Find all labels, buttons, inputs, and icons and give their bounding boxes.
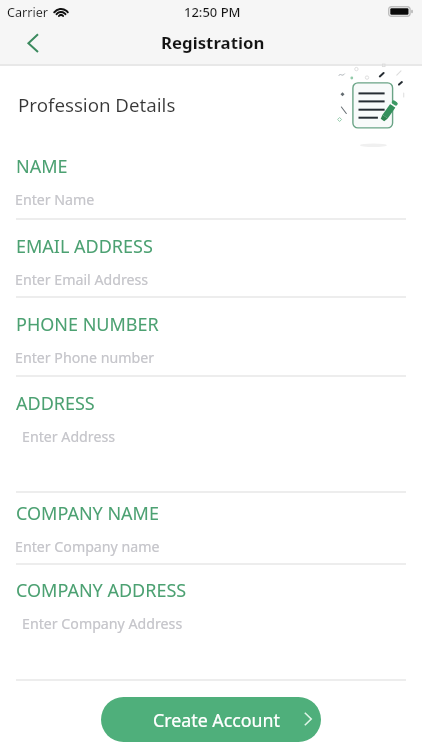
staticText: Enter Company name (15, 537, 160, 556)
button[interactable]: COMPANY ADDRESS (16, 572, 406, 681)
staticText: Enter Name (15, 190, 95, 209)
staticText: PHONE NUMBER (16, 312, 159, 337)
button[interactable]: ADDRESS (16, 385, 406, 493)
button[interactable]: EMAIL ADDRESS (16, 228, 406, 298)
staticText: Enter Email Address (15, 270, 149, 289)
staticText: COMPANY NAME (16, 501, 159, 526)
button[interactable]: Back (0, 26, 48, 64)
staticText: EMAIL ADDRESS (16, 234, 153, 259)
staticText: Create Account (153, 708, 280, 732)
staticText: ADDRESS (16, 391, 95, 416)
staticText: Profession Details (18, 92, 176, 117)
staticText: Carrier (7, 4, 48, 21)
button[interactable]: Create Account (101, 697, 321, 742)
staticText: Enter Company Address (22, 614, 183, 633)
staticText: Registration (161, 31, 265, 54)
staticText: Enter Phone number (15, 348, 155, 367)
staticText: 12:50 PM (184, 3, 241, 21)
button[interactable]: COMPANY NAME (16, 495, 406, 565)
button[interactable]: NAME (16, 148, 406, 219)
staticText: COMPANY ADDRESS (16, 578, 187, 603)
staticText: NAME (16, 154, 68, 179)
button[interactable]: PHONE NUMBER (16, 306, 406, 377)
staticText: Enter Address (22, 427, 116, 446)
